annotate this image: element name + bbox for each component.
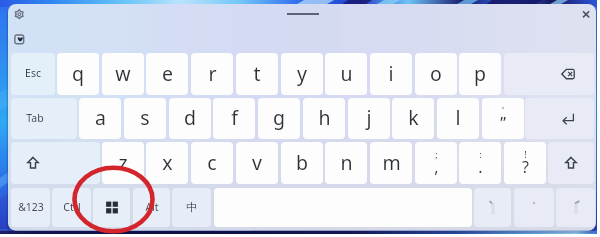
button[interactable]: u [325, 53, 367, 95]
staticText: m [382, 149, 401, 176]
button[interactable]: e [146, 53, 188, 95]
button[interactable]: l [437, 98, 479, 139]
staticText: ’ [502, 104, 504, 116]
button[interactable]: Backspace [504, 53, 594, 95]
staticText: i [388, 60, 394, 87]
staticText: o [430, 60, 442, 87]
staticText: r [208, 60, 217, 87]
button[interactable]: Ctrl [52, 188, 91, 227]
button[interactable]: c [191, 142, 233, 184]
button[interactable]: s [124, 98, 166, 139]
button[interactable]: o [415, 53, 457, 95]
button[interactable]: k [392, 98, 434, 139]
button[interactable]: f [213, 98, 255, 139]
button[interactable]: ! [504, 142, 546, 184]
button[interactable]: j [348, 98, 390, 139]
staticText: w [115, 60, 131, 87]
button[interactable]: v [236, 142, 278, 184]
staticText: t [253, 60, 261, 87]
button[interactable]: r [191, 53, 233, 95]
staticText: c [207, 149, 217, 176]
button[interactable]: a [79, 98, 121, 139]
staticText: , [434, 156, 439, 178]
button[interactable]: m [370, 142, 412, 184]
button[interactable]: t [236, 53, 278, 95]
button[interactable]: q [57, 53, 99, 95]
button[interactable]: Alt [133, 188, 170, 227]
button[interactable]: Left [474, 188, 511, 227]
staticText: Esc [25, 66, 41, 80]
staticText: ; [435, 148, 438, 160]
button[interactable]: Emoji [9, 29, 29, 49]
staticText: n [340, 149, 353, 176]
button[interactable]: Close [578, 6, 594, 22]
button[interactable]: i [370, 53, 412, 95]
button[interactable]: Shift [548, 142, 594, 184]
staticText: z [118, 149, 128, 176]
button[interactable]: h [303, 98, 345, 139]
staticText: k [408, 104, 419, 131]
button[interactable]: Windows [93, 188, 130, 227]
button[interactable]: Settings [9, 4, 29, 24]
button[interactable]: n [325, 142, 367, 184]
button[interactable]: x [146, 142, 188, 184]
button[interactable]: 中 [172, 188, 211, 227]
staticText: q [72, 60, 84, 87]
staticText: &123 [18, 200, 44, 214]
button[interactable]: p [459, 53, 501, 95]
staticText: d [184, 104, 196, 131]
button[interactable]: b [281, 142, 323, 184]
staticText: u [340, 60, 353, 87]
button[interactable]: &123 [11, 188, 50, 227]
button[interactable]: Right [556, 188, 595, 227]
staticText: x [162, 149, 173, 176]
staticText: : [479, 148, 482, 160]
staticText: ! [524, 148, 527, 160]
staticText: f [231, 104, 238, 131]
staticText: ” [500, 112, 506, 134]
staticText: 中 [186, 200, 197, 214]
button[interactable]: Enter [525, 98, 594, 139]
button[interactable]: ; [415, 142, 457, 184]
staticText: ? [522, 156, 529, 178]
button[interactable]: ’ [482, 98, 524, 139]
staticText: p [474, 60, 486, 87]
button[interactable]: y [281, 53, 323, 95]
staticText: h [318, 104, 331, 131]
staticText: v [252, 149, 262, 176]
staticText: g [273, 104, 285, 131]
staticText: b [296, 149, 308, 176]
button[interactable]: : [459, 142, 501, 184]
button[interactable]: Shift [11, 142, 100, 184]
button[interactable]: g [258, 98, 300, 139]
staticText: . [478, 156, 483, 178]
staticText: e [162, 60, 173, 87]
button[interactable]: z [102, 142, 144, 184]
staticText: j [366, 104, 372, 131]
staticText: s [140, 104, 150, 131]
staticText: Alt [145, 200, 159, 214]
staticText: l [455, 104, 461, 131]
staticText: y [297, 60, 307, 87]
button[interactable]: d [169, 98, 211, 139]
button[interactable]: Tab [11, 98, 77, 139]
staticText: Tab [26, 111, 44, 125]
staticText: Ctrl [63, 200, 81, 214]
button[interactable]: Esc [11, 53, 55, 95]
staticText: a [95, 104, 106, 131]
button[interactable]: w [102, 53, 144, 95]
